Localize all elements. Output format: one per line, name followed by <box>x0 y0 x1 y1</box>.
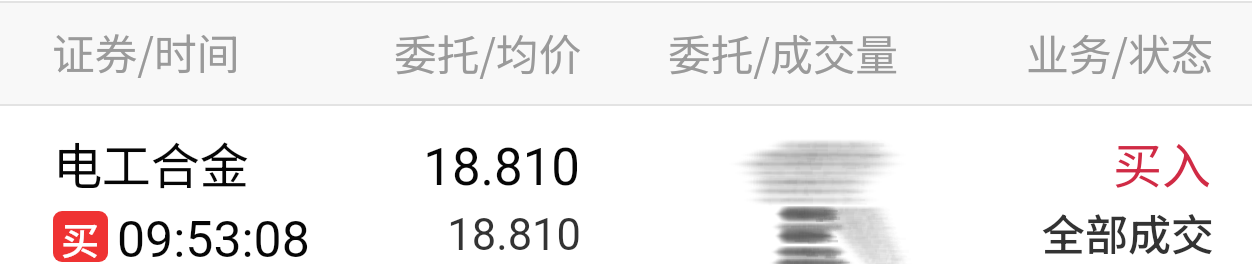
staticText: 18.810 <box>0 210 581 261</box>
staticText: 委托/均价 <box>394 21 582 83</box>
staticText: 全部成交 <box>0 201 1214 263</box>
staticText: 18.810 <box>0 138 580 198</box>
button[interactable]: 委托/均价 <box>334 3 634 104</box>
staticText: 09:53:08 <box>117 211 310 264</box>
staticText: 电工合金 <box>53 127 250 198</box>
button[interactable]: 电工合金 <box>0 106 1252 264</box>
staticText: 买 <box>61 211 100 262</box>
staticText: 证券/时间 <box>52 20 240 82</box>
button[interactable]: 业务/状态 <box>990 3 1252 104</box>
button[interactable]: 证券/时间 <box>0 3 334 104</box>
staticText: 买入 <box>0 127 1211 198</box>
other: Order quantity, hidden <box>726 124 922 264</box>
staticText: 委托/成交量 <box>668 21 899 83</box>
button[interactable]: 委托/成交量 <box>634 3 990 104</box>
staticText: 业务/状态 <box>1026 21 1214 83</box>
